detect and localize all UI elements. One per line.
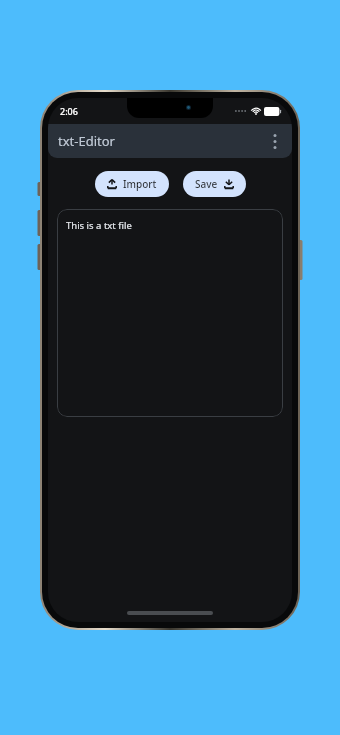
staticText: Save xyxy=(195,177,218,191)
button[interactable]: Import xyxy=(95,171,169,197)
button[interactable]: More options xyxy=(262,128,288,154)
staticText: txt-Editor xyxy=(58,132,115,150)
staticText: Import xyxy=(123,177,157,191)
staticText: This is a txt file xyxy=(66,219,132,232)
button[interactable]: This is a txt file xyxy=(57,209,283,417)
staticText: 2:06 xyxy=(60,105,78,117)
button[interactable]: Save xyxy=(183,171,246,197)
